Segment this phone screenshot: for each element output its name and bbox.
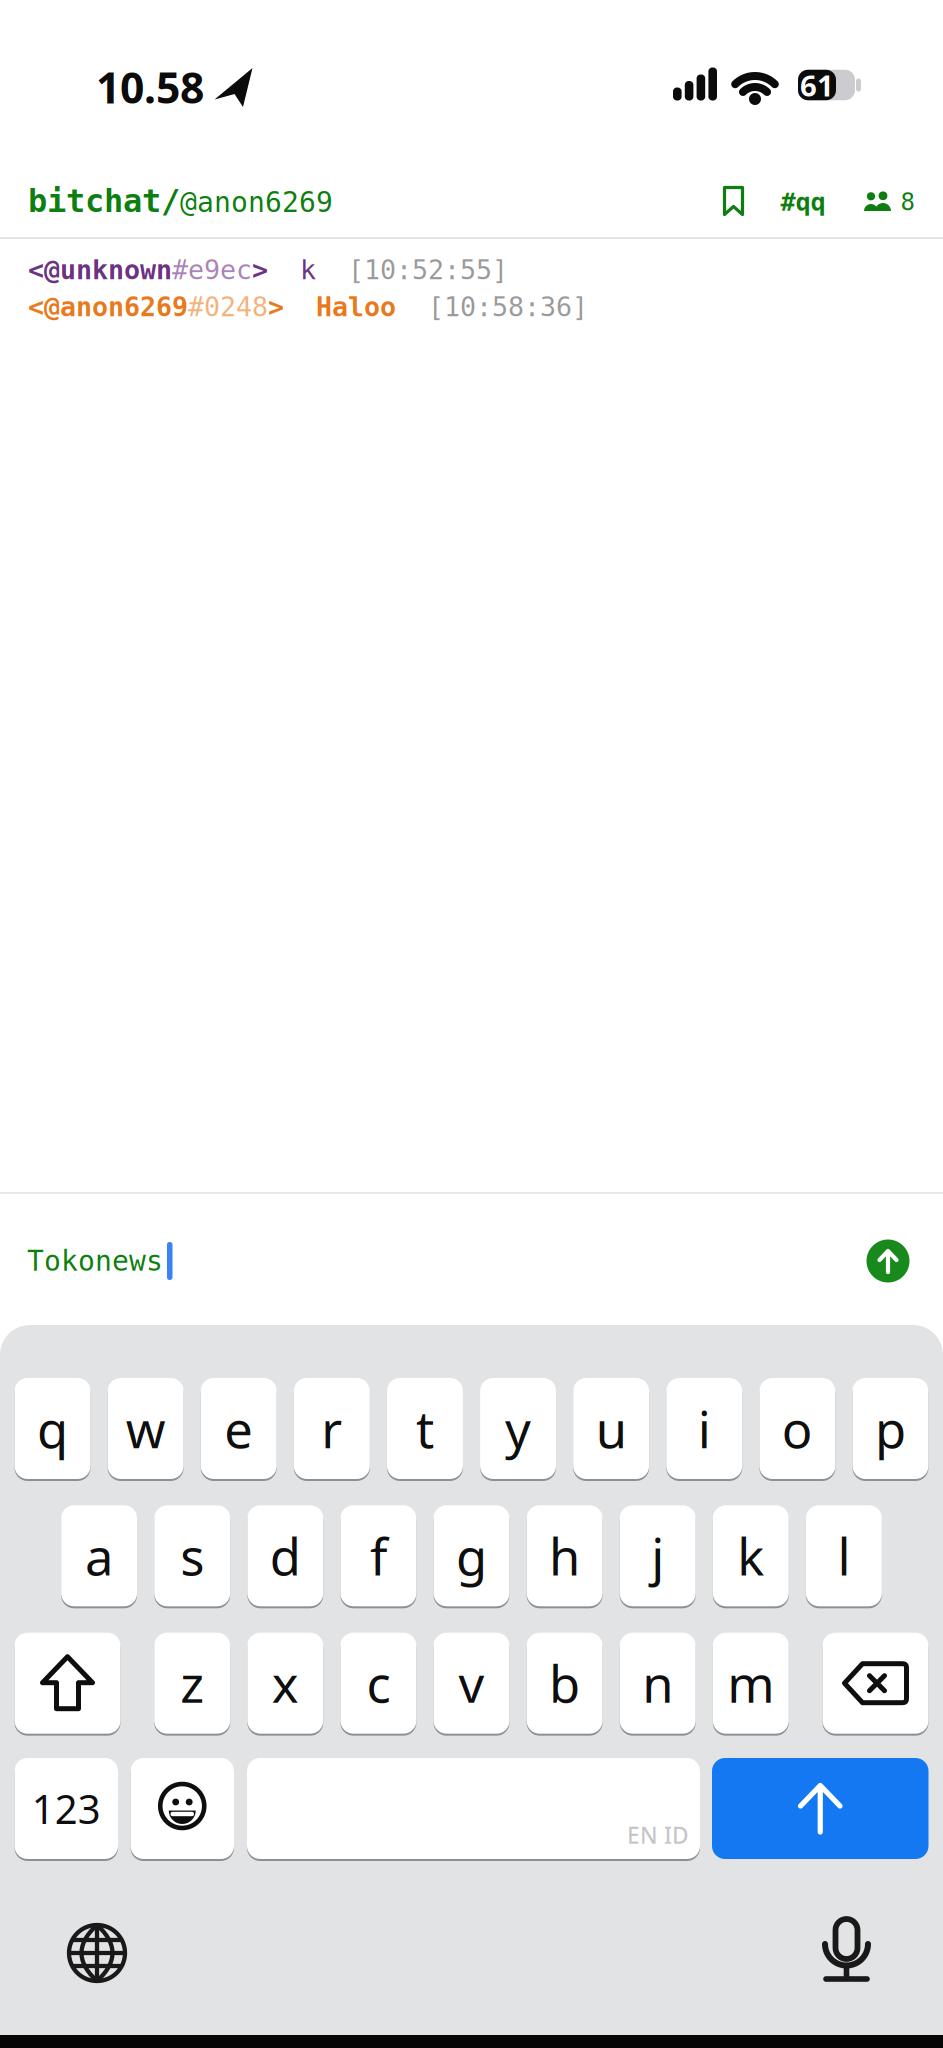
button[interactable]: Space <box>247 1758 700 1859</box>
staticText: i <box>698 1395 711 1462</box>
button[interactable]: k <box>713 1505 789 1606</box>
staticText: Tokonews <box>27 1245 163 1277</box>
staticText: #qq <box>780 188 825 216</box>
button[interactable]: Bookmark <box>720 184 746 218</box>
staticText: x <box>272 1650 299 1717</box>
staticText: 10.58 <box>96 59 204 115</box>
staticText: s <box>180 1522 204 1589</box>
staticText: 8 <box>900 188 914 216</box>
staticText: k <box>737 1522 764 1589</box>
staticText: o <box>782 1395 813 1462</box>
button[interactable]: c <box>340 1633 416 1734</box>
staticText: bitchat/ <box>28 183 180 219</box>
staticText: EN ID <box>627 1820 689 1850</box>
button[interactable]: r <box>294 1378 370 1479</box>
staticText: y <box>505 1395 531 1462</box>
staticText: [10:52:55] <box>348 255 508 285</box>
button[interactable]: l <box>806 1505 882 1606</box>
staticText: h <box>549 1522 580 1589</box>
staticText: f <box>370 1522 387 1589</box>
button[interactable]: Emoji <box>130 1758 234 1859</box>
button[interactable]: Delete <box>822 1633 928 1734</box>
staticText: [10:58:36] <box>428 292 588 322</box>
staticText: p <box>875 1395 906 1462</box>
button[interactable]: a <box>61 1505 137 1606</box>
staticText: k <box>268 255 348 285</box>
button[interactable]: z <box>154 1633 230 1734</box>
button[interactable]: #qq <box>780 188 825 216</box>
button[interactable]: i <box>666 1378 742 1479</box>
staticText: z <box>180 1650 204 1717</box>
staticText: m <box>727 1650 774 1717</box>
button[interactable]: x <box>247 1633 323 1734</box>
button[interactable]: Next keyboard <box>65 1921 129 1985</box>
staticText: > <box>268 292 284 322</box>
staticText: 123 <box>32 1782 101 1835</box>
button[interactable]: g <box>433 1505 509 1606</box>
staticText: <@unknown <box>28 255 172 285</box>
button[interactable]: Return <box>712 1758 928 1859</box>
button[interactable]: 123 <box>14 1758 118 1859</box>
staticText: u <box>596 1395 627 1462</box>
staticText: #e9ec <box>172 255 252 285</box>
staticText: d <box>270 1522 301 1589</box>
staticText: <@anon6269 <box>28 292 188 322</box>
staticText: @anon6269 <box>180 186 333 218</box>
staticText: q <box>37 1395 68 1462</box>
staticText: j <box>651 1522 664 1589</box>
staticText: a <box>85 1522 113 1589</box>
button[interactable]: d <box>247 1505 323 1606</box>
button[interactable]: v <box>433 1633 509 1734</box>
button[interactable]: e <box>201 1378 277 1479</box>
staticText: > <box>252 255 268 285</box>
button[interactable]: u <box>573 1378 649 1479</box>
staticText: b <box>549 1650 580 1717</box>
button[interactable]: o <box>759 1378 835 1479</box>
button[interactable]: Shift <box>14 1633 120 1734</box>
button[interactable]: s <box>154 1505 230 1606</box>
button[interactable]: y <box>480 1378 556 1479</box>
staticText: g <box>456 1522 487 1589</box>
button[interactable]: t <box>387 1378 463 1479</box>
button[interactable]: f <box>340 1505 416 1606</box>
staticText: l <box>837 1522 850 1589</box>
staticText: 61 <box>800 65 834 104</box>
staticText: r <box>321 1395 342 1462</box>
staticText: t <box>416 1395 434 1462</box>
button[interactable]: Message input <box>27 1226 860 1296</box>
staticText: w <box>126 1395 166 1462</box>
button[interactable]: h <box>527 1505 603 1606</box>
staticText: n <box>642 1650 673 1717</box>
staticText: c <box>366 1650 390 1717</box>
button[interactable]: p <box>852 1378 928 1479</box>
staticText: Haloo <box>284 292 428 322</box>
button[interactable]: q <box>14 1378 90 1479</box>
button[interactable]: n <box>620 1633 696 1734</box>
button[interactable]: m <box>713 1633 789 1734</box>
button[interactable]: j <box>620 1505 696 1606</box>
staticText: #0248 <box>188 292 268 322</box>
button[interactable]: w <box>108 1378 184 1479</box>
button[interactable]: Dictation <box>814 1911 878 1991</box>
button[interactable]: Send <box>866 1239 909 1282</box>
staticText: v <box>458 1650 484 1717</box>
staticText: e <box>224 1395 253 1462</box>
button[interactable]: b <box>527 1633 603 1734</box>
button[interactable]: 8 people <box>863 188 914 216</box>
